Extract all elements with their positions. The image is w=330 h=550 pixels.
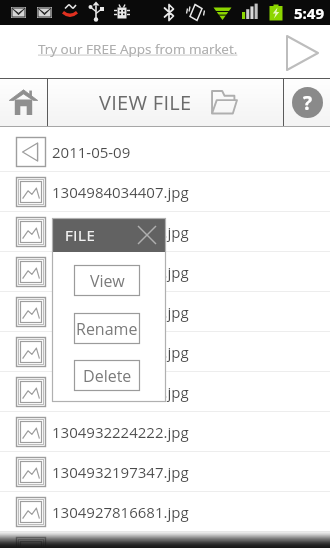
button[interactable]: 2011-05-09: [0, 132, 330, 172]
button[interactable]: 1304983611884.jpg: [0, 332, 330, 372]
button[interactable]: Close: [132, 220, 162, 250]
staticText: 1304932197347.jpg: [52, 462, 189, 482]
staticText: 1304983812991.jpg: [52, 262, 189, 282]
other: Play: [286, 35, 319, 71]
button[interactable]: 1304983918283.jpg: [0, 212, 330, 252]
button[interactable]: 1304984034407.jpg: [0, 172, 330, 212]
staticText: 1304983712155.jpg: [52, 302, 189, 322]
staticText: Delete: [83, 365, 132, 387]
button[interactable]: Help: [284, 78, 330, 126]
button[interactable]: Delete: [74, 360, 140, 391]
staticText: 1304983611884.jpg: [52, 342, 189, 362]
button[interactable]: 1304983812991.jpg: [0, 252, 330, 292]
staticText: VIEW FILE: [99, 89, 192, 116]
button[interactable]: Try our FREE Apps from market.: [0, 25, 330, 78]
button[interactable]: VIEW FILE: [48, 78, 283, 126]
button[interactable]: Home: [0, 78, 47, 126]
staticText: ?: [303, 90, 313, 116]
button[interactable]: 1304932224222.jpg: [0, 412, 330, 452]
staticText: 5:49: [294, 3, 324, 23]
staticText: 1304984034407.jpg: [52, 182, 189, 202]
staticText: 1304983918283.jpg: [52, 222, 189, 242]
button[interactable]: 1304932302244.jpg: [0, 372, 330, 412]
staticText: Try our FREE Apps from market.: [38, 40, 238, 58]
staticText: FILE: [65, 225, 96, 245]
staticText: View: [90, 270, 125, 292]
button[interactable]: Rename: [74, 313, 140, 344]
staticText: 1304927719853.jpg: [52, 542, 189, 550]
staticText: Rename: [76, 318, 138, 340]
staticText: 1304927816681.jpg: [52, 502, 189, 522]
button[interactable]: View: [74, 265, 140, 296]
button[interactable]: 1304927816681.jpg: [0, 492, 330, 532]
button[interactable]: 1304927719853.jpg: [0, 532, 330, 550]
staticText: 1304932224222.jpg: [52, 422, 189, 442]
staticText: 2011-05-09: [52, 142, 131, 162]
button[interactable]: 1304983712155.jpg: [0, 292, 330, 332]
button[interactable]: 1304932197347.jpg: [0, 452, 330, 492]
staticText: 1304932302244.jpg: [52, 382, 189, 402]
